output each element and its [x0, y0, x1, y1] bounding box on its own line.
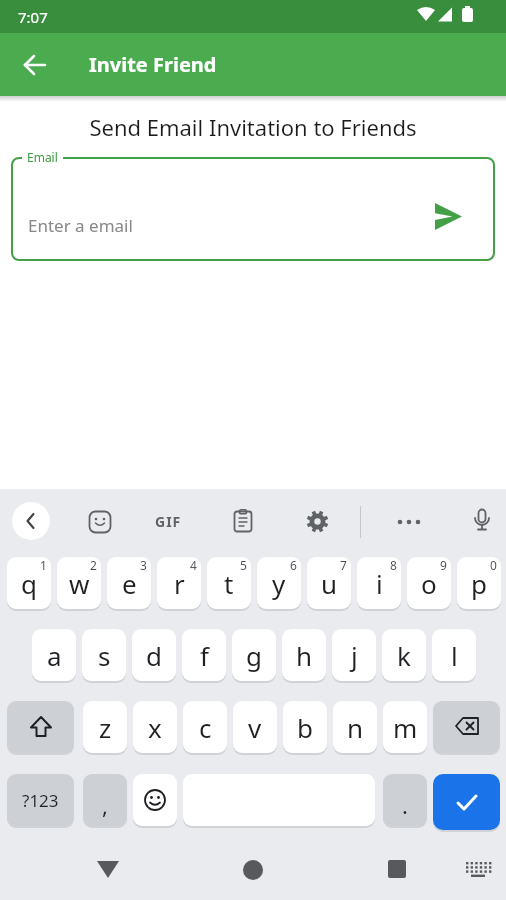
staticText: p	[471, 566, 487, 601]
button[interactable]: l	[432, 629, 476, 681]
staticText: j	[351, 638, 358, 673]
button[interactable]: v	[233, 701, 277, 753]
staticText: k	[397, 638, 411, 673]
button[interactable]	[242, 859, 264, 881]
button[interactable]: g	[232, 629, 276, 681]
button[interactable]	[231, 509, 256, 534]
button[interactable]: p	[457, 557, 501, 609]
staticText: z	[99, 710, 112, 745]
staticText: ,	[102, 790, 108, 820]
button[interactable]: q	[7, 557, 51, 609]
button[interactable]: j	[332, 629, 376, 681]
staticText: r	[174, 566, 185, 601]
button[interactable]	[470, 508, 494, 536]
button[interactable]: r	[157, 557, 201, 609]
staticText: q	[21, 566, 37, 601]
staticText: 7:07	[18, 7, 48, 27]
button[interactable]	[388, 860, 407, 879]
staticText: 9	[440, 557, 447, 573]
button[interactable]	[12, 41, 60, 89]
staticText: ?123	[22, 789, 59, 812]
staticText: w	[69, 566, 90, 601]
button[interactable]: a	[32, 629, 76, 681]
button[interactable]: b	[283, 701, 327, 753]
staticText: c	[199, 710, 212, 745]
button[interactable]: o	[407, 557, 451, 609]
button[interactable]: c	[183, 701, 227, 753]
button[interactable]	[133, 774, 177, 826]
button[interactable]: y	[257, 557, 301, 609]
button[interactable]: d	[132, 629, 176, 681]
button[interactable]: t	[207, 557, 251, 609]
staticText: y	[272, 566, 286, 601]
staticText: 3	[140, 557, 147, 573]
staticText: GIF	[155, 512, 182, 531]
staticText: 5	[240, 557, 247, 573]
button[interactable]: n	[333, 701, 377, 753]
staticText: Email	[27, 149, 58, 165]
staticText: 2	[90, 557, 97, 573]
button[interactable]: GIF	[155, 512, 182, 531]
staticText: Send Email Invitation to Friends	[0, 112, 506, 142]
staticText: f	[200, 638, 209, 673]
staticText: 1	[40, 557, 47, 573]
staticText: x	[148, 710, 162, 745]
button[interactable]: h	[282, 629, 326, 681]
staticText: g	[246, 638, 262, 673]
staticText: a	[47, 638, 62, 673]
staticText: Invite Friend	[89, 51, 217, 78]
staticText: t	[224, 566, 234, 601]
staticText: v	[248, 710, 262, 745]
staticText: .	[402, 790, 408, 820]
staticText: 7	[340, 557, 347, 573]
button[interactable]: w	[57, 557, 101, 609]
button[interactable]	[12, 502, 50, 540]
button[interactable]	[88, 510, 112, 534]
staticText: m	[393, 710, 418, 745]
button[interactable]: ?123	[7, 774, 74, 826]
staticText: 6	[290, 557, 297, 573]
button[interactable]: u	[307, 557, 351, 609]
staticText: 0	[490, 557, 497, 573]
staticText: u	[321, 566, 338, 601]
button[interactable]	[95, 858, 121, 880]
button[interactable]: k	[382, 629, 426, 681]
staticText: i	[376, 566, 383, 601]
button[interactable]: s	[82, 629, 126, 681]
staticText: b	[297, 710, 313, 745]
button[interactable]	[433, 774, 500, 830]
button[interactable]: i	[357, 557, 401, 609]
button[interactable]: .	[383, 774, 427, 826]
staticText: n	[347, 710, 364, 745]
button[interactable]: Enter a email	[11, 157, 495, 261]
button[interactable]: e	[107, 557, 151, 609]
button[interactable]: m	[383, 701, 427, 753]
button[interactable]	[465, 862, 492, 878]
button[interactable]: z	[83, 701, 127, 753]
staticText: e	[122, 566, 137, 601]
staticText: 4	[190, 557, 197, 573]
staticText: o	[421, 566, 437, 601]
staticText: Enter a email	[28, 214, 133, 237]
button[interactable]: x	[133, 701, 177, 753]
button[interactable]	[7, 701, 74, 753]
staticText: 8	[390, 557, 397, 573]
button[interactable]	[305, 509, 330, 534]
staticText: s	[98, 638, 111, 673]
button[interactable]	[396, 518, 422, 526]
staticText: l	[451, 638, 458, 673]
button[interactable]	[433, 701, 500, 753]
staticText: d	[146, 638, 162, 673]
button[interactable]: f	[182, 629, 226, 681]
staticText: h	[296, 638, 313, 673]
button[interactable]: ,	[83, 774, 127, 826]
